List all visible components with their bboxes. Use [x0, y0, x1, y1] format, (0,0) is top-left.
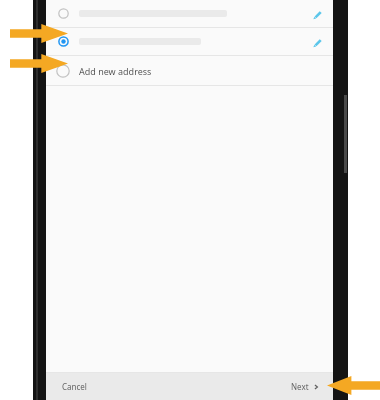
button[interactable]: Cancel — [54, 376, 95, 397]
staticText: Add new address — [79, 65, 152, 77]
button[interactable]: Edit address — [46, 0, 333, 27]
button[interactable]: Add new address — [46, 56, 333, 85]
button[interactable]: Next — [283, 376, 327, 397]
button[interactable]: Edit address — [310, 7, 324, 21]
staticText: Next — [291, 381, 309, 392]
staticText: Cancel — [62, 381, 87, 392]
button[interactable]: Edit address — [310, 35, 324, 49]
button[interactable]: Edit address — [46, 28, 333, 55]
